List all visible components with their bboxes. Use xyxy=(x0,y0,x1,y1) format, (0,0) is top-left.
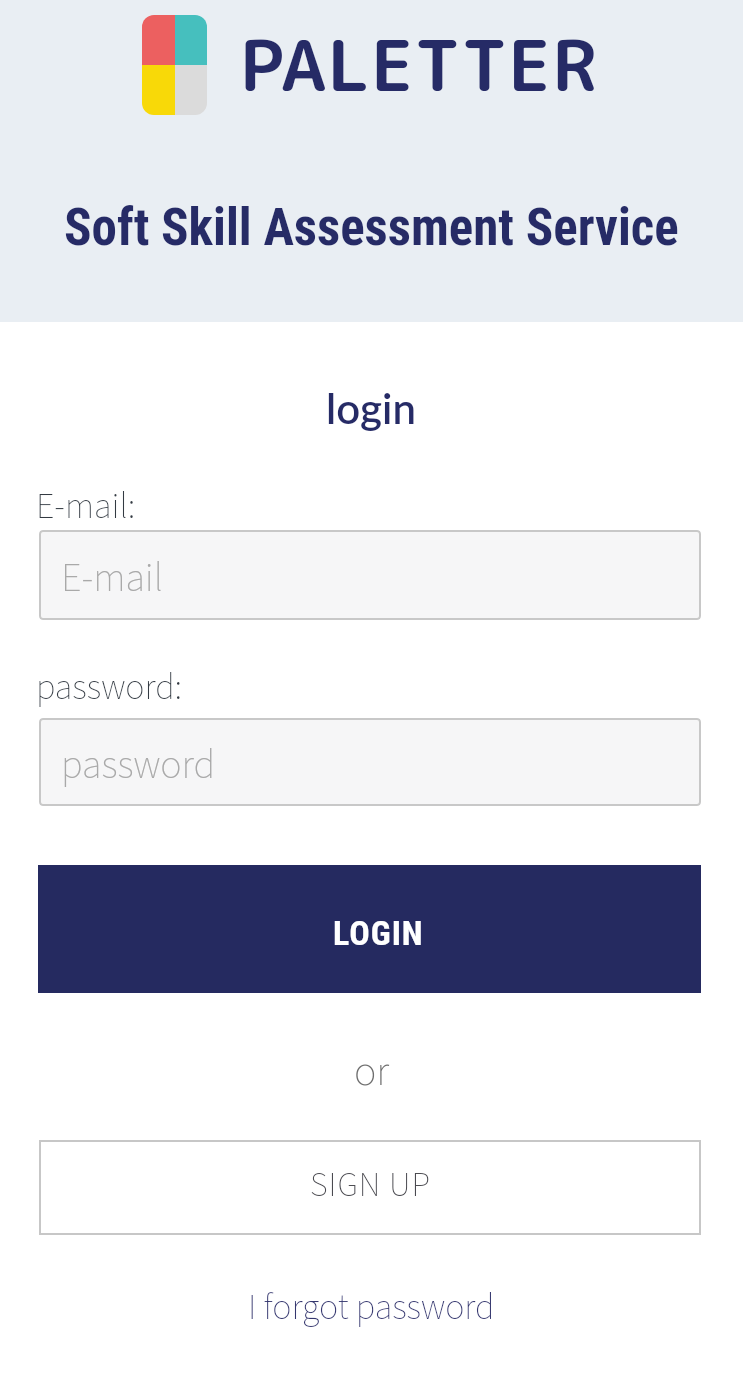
button[interactable]: E-mail xyxy=(39,530,701,620)
staticText: password xyxy=(61,737,215,794)
staticText: PALETTER xyxy=(240,16,599,96)
staticText: E-mail xyxy=(61,550,163,607)
staticText: SIGN UP xyxy=(310,1161,431,1209)
staticText: login xyxy=(326,383,417,433)
button[interactable]: LOGIN xyxy=(38,865,701,993)
button[interactable]: I forgot password xyxy=(248,1282,495,1332)
staticText: or xyxy=(354,1042,390,1092)
button[interactable]: SIGN UP xyxy=(39,1140,701,1235)
staticText: E-mail: xyxy=(36,481,136,532)
staticText: password: xyxy=(36,662,183,713)
button[interactable]: password xyxy=(39,718,701,806)
staticText: Soft Skill Assessment Service xyxy=(64,198,679,258)
staticText: LOGIN xyxy=(333,913,424,953)
